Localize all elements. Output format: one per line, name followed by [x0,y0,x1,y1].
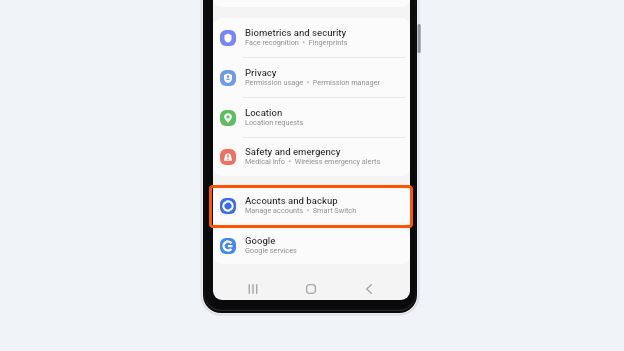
button[interactable]: Location [213,98,410,138]
staticText: Privacy [245,67,277,78]
staticText: Safety and emergency [245,146,341,157]
button[interactable]: Safety and emergency [213,138,410,176]
button[interactable]: Recents [241,277,265,301]
staticText: Google [245,235,276,246]
staticText: Google services [245,246,297,255]
staticText: Location requests [245,118,304,127]
staticText: Accounts and backup [245,195,338,206]
staticText: Biometrics and security [245,27,347,38]
staticText: Manage accounts • Smart Switch [245,206,357,215]
staticText: Medical info • Wireless emergency alerts [245,157,381,166]
button[interactable]: Privacy [213,58,410,98]
button[interactable]: Home [299,277,323,301]
staticText: Face recognition • Fingerprints [245,38,348,47]
staticText: Permission usage • Permission manager [245,78,380,87]
staticText: Location [245,107,283,118]
button[interactable]: Accounts and backup [209,185,413,228]
button[interactable]: Biometrics and security [213,18,410,58]
button[interactable]: Back [357,277,381,301]
button[interactable]: Google [213,228,410,264]
button[interactable]: Accounts and backup [213,186,410,226]
